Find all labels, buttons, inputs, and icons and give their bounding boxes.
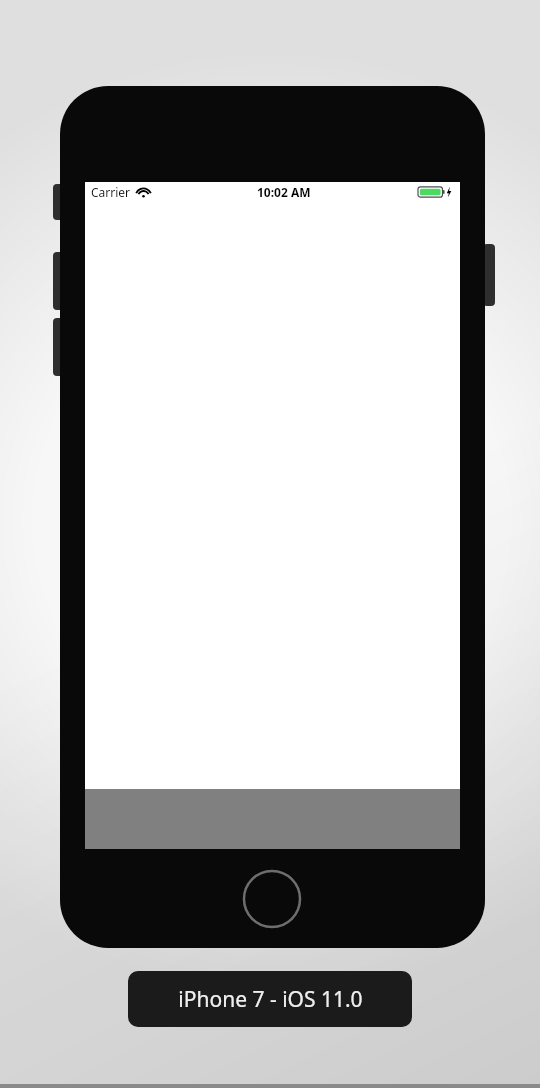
other: Wi-Fi signal [136, 186, 151, 198]
staticText: iPhone 7 - iOS 11.0 [178, 985, 363, 1014]
button[interactable]: iPhone 7 - iOS 11.0 [128, 971, 412, 1027]
other: Battery charging [418, 185, 454, 199]
staticText: 10:02 AM [257, 184, 311, 200]
staticText: Carrier [91, 184, 131, 200]
